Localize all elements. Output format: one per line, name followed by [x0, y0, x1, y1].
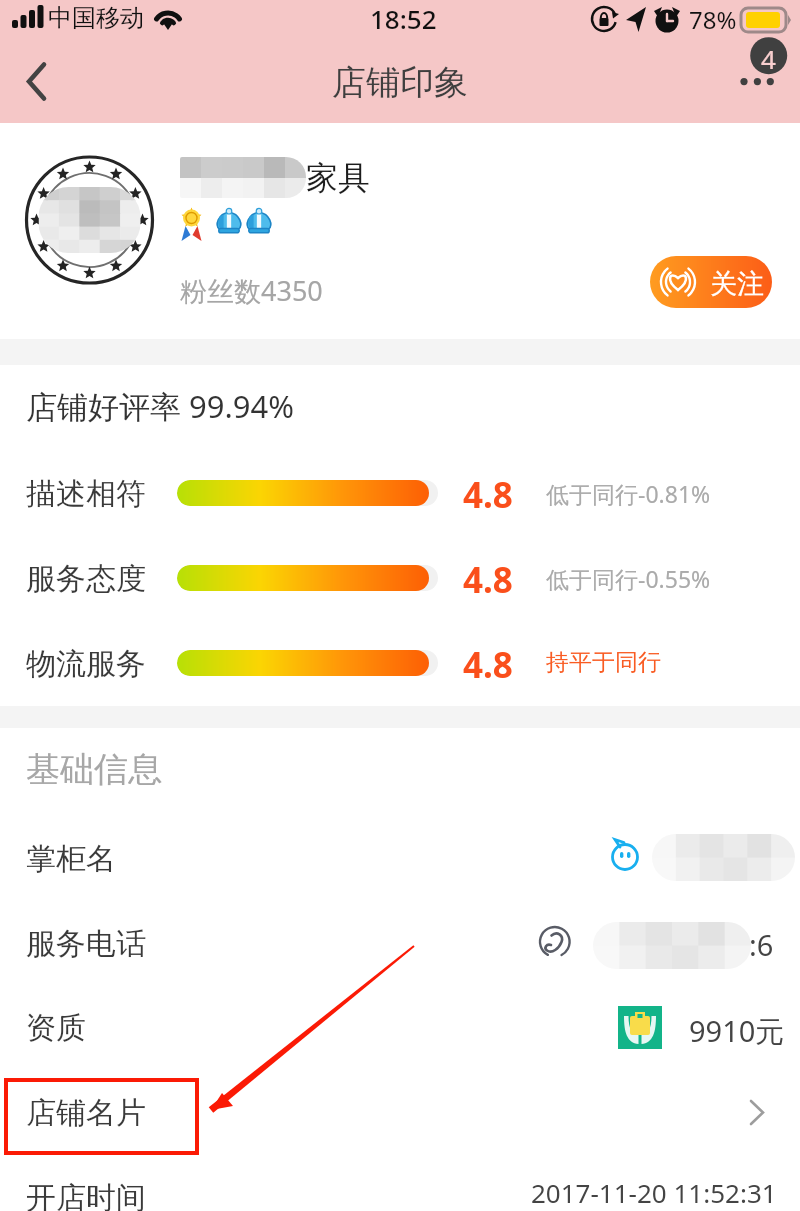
staticText: 78%	[689, 3, 737, 36]
staticText: 9910元	[689, 1011, 785, 1051]
staticText: 店铺印象	[332, 61, 468, 104]
staticText: 服务电话	[26, 925, 146, 963]
button[interactable]: 服务电话	[0, 905, 800, 990]
staticText: 掌柜名	[26, 840, 116, 878]
staticText: 物流服务	[26, 645, 146, 683]
staticText: 低于同行-0.81%	[546, 478, 711, 509]
button[interactable]: 开店时间	[0, 1160, 800, 1211]
button[interactable]: Shop profile	[0, 123, 800, 339]
staticText: 4.8	[463, 471, 513, 519]
staticText: 资质	[26, 1009, 86, 1047]
staticText: 基础信息	[26, 748, 162, 791]
staticText: 店铺名片	[26, 1094, 146, 1132]
staticText: 描述相符	[26, 475, 146, 513]
staticText: 18:52	[370, 1, 437, 36]
staticText: 持平于同行	[546, 648, 661, 677]
staticText: 关注	[710, 267, 764, 301]
staticText: 低于同行-0.55%	[546, 563, 711, 594]
staticText: 家具	[306, 158, 370, 198]
staticText: 服务态度	[26, 560, 146, 598]
staticText: 4	[761, 41, 776, 76]
button[interactable]: 掌柜名	[0, 820, 800, 905]
staticText: :6	[749, 925, 774, 964]
button[interactable]: 资质	[0, 990, 800, 1075]
button[interactable]: 关注	[650, 256, 772, 308]
staticText: 店铺好评率 99.94%	[26, 385, 295, 427]
staticText: 中国移动	[48, 3, 144, 33]
button[interactable]: More options, 4 notifications	[720, 34, 800, 100]
staticText: 开店时间	[26, 1179, 146, 1211]
staticText: 4.8	[463, 556, 513, 604]
button[interactable]: Back	[0, 44, 78, 123]
staticText: 2017-11-20 11:52:31	[531, 1175, 777, 1210]
staticText: 4.8	[463, 641, 513, 689]
staticText: 粉丝数4350	[180, 272, 323, 309]
button[interactable]: 店铺名片	[0, 1075, 800, 1160]
